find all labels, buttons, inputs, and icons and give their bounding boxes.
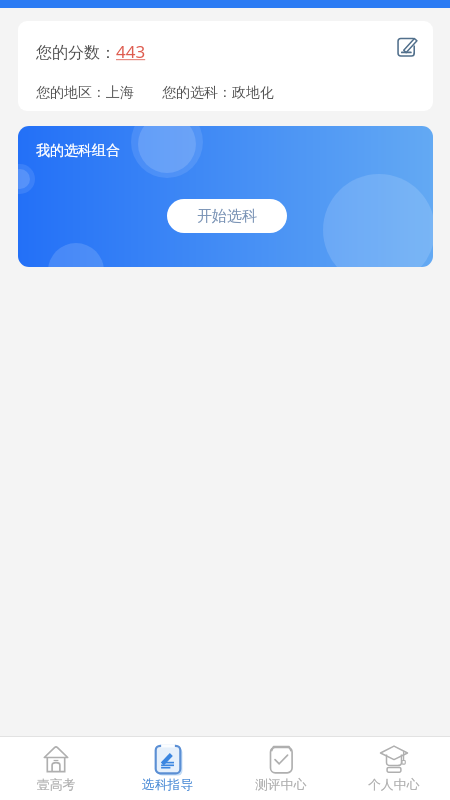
staticText: 443 bbox=[116, 40, 146, 63]
staticText: 您的选科：政地化 bbox=[162, 84, 274, 102]
button[interactable]: 壹高考 bbox=[0, 737, 112, 800]
staticText: 开始选科 bbox=[197, 207, 257, 226]
staticText: 您的地区：上海 bbox=[36, 84, 134, 102]
button[interactable]: 选科指导 bbox=[112, 737, 224, 800]
button[interactable]: 我的选科组合 bbox=[18, 126, 433, 267]
button[interactable]: 开始选科 bbox=[167, 199, 287, 233]
button[interactable]: 个人中心 bbox=[337, 737, 450, 800]
staticText: 测评中心 bbox=[255, 777, 307, 793]
staticText: 我的选科组合 bbox=[36, 142, 120, 160]
button[interactable]: 测评中心 bbox=[224, 737, 337, 800]
staticText: 个人中心 bbox=[368, 777, 420, 793]
button[interactable]: 编辑 bbox=[393, 32, 421, 60]
staticText: 选科指导 bbox=[142, 777, 194, 793]
staticText: 壹高考 bbox=[37, 777, 76, 793]
staticText: 您的分数： bbox=[36, 43, 116, 63]
